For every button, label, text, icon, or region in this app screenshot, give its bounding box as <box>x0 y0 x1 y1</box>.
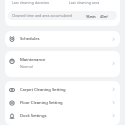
button[interactable]: Carpet Cleaning Setting <box>5 83 120 96</box>
button[interactable]: Schedules <box>5 31 120 47</box>
staticText: Schedules <box>20 36 40 42</box>
staticText: Last cleaning area <box>69 0 100 5</box>
other: Dock Settings <box>9 113 15 119</box>
staticText: Normal <box>20 64 33 69</box>
button[interactable]: Maintenance <box>5 51 120 75</box>
button[interactable]: Floor Cleaning Setting <box>5 96 120 109</box>
other: Floor Cleaning Setting <box>9 100 15 106</box>
staticText: Cleaned time and area accumulated <box>12 13 86 18</box>
staticText: Last cleaning duration <box>12 0 50 5</box>
other: Schedules <box>9 36 15 42</box>
staticText: Floor Cleaning Setting <box>20 100 63 106</box>
button[interactable]: Cleaned time and area accumulated <box>8 11 117 20</box>
staticText: Maintenance <box>20 57 46 63</box>
other: Carpet Cleaning Setting <box>9 87 15 93</box>
staticText: 40m² <box>100 14 108 18</box>
staticText: 96min <box>86 14 96 18</box>
staticText: Dock Settings <box>20 113 47 119</box>
other: Maintenance <box>9 59 15 63</box>
button[interactable]: Dock Settings <box>5 109 120 122</box>
staticText: Carpet Cleaning Setting <box>20 87 66 93</box>
